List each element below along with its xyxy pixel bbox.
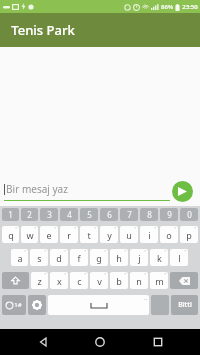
- button[interactable]: j: [130, 249, 148, 266]
- staticText: ': [154, 226, 156, 233]
- staticText: ..: [144, 295, 147, 302]
- staticText: ': [44, 249, 46, 256]
- button[interactable]: x: [50, 272, 68, 289]
- button[interactable]: v: [90, 272, 108, 289]
- staticText: ': [54, 226, 56, 233]
- staticText: k: [157, 252, 162, 264]
- staticText: ': [84, 249, 86, 256]
- button[interactable]: 5: [80, 208, 98, 221]
- staticText: n: [136, 275, 142, 287]
- staticText: Tenis Park: [11, 21, 75, 39]
- button[interactable]: s: [30, 249, 48, 266]
- staticText: u: [126, 229, 132, 241]
- button[interactable]: u: [120, 226, 138, 243]
- button[interactable]: b: [110, 272, 128, 289]
- staticText: ': [164, 249, 166, 256]
- staticText: z: [37, 275, 42, 287]
- button[interactable]: Back: [28, 329, 58, 355]
- staticText: ': [74, 226, 76, 233]
- staticText: 5: [87, 209, 92, 220]
- staticText: 6: [107, 209, 112, 220]
- button[interactable]: 8: [140, 208, 158, 221]
- button[interactable]: h: [110, 249, 128, 266]
- staticText: ': [84, 272, 86, 279]
- staticText: s: [37, 252, 42, 264]
- button[interactable]: q: [2, 226, 19, 243]
- staticText: ': [124, 249, 126, 256]
- button[interactable]: w: [21, 226, 38, 243]
- staticText: Bir mesaj yaz: [6, 182, 68, 196]
- button[interactable]: 3: [40, 208, 58, 221]
- staticText: Bitti: [178, 300, 192, 310]
- button[interactable]: Settings: [28, 295, 46, 315]
- button[interactable]: z: [31, 272, 48, 289]
- button[interactable]: 2: [21, 208, 38, 221]
- staticText: ': [144, 272, 146, 279]
- button[interactable]: Recents: [143, 329, 173, 355]
- button[interactable]: 7: [120, 208, 138, 221]
- staticText: ': [144, 249, 146, 256]
- button[interactable]: Bir mesaj yaz: [4, 182, 170, 197]
- button[interactable]: m: [150, 272, 168, 289]
- staticText: q: [8, 229, 14, 241]
- staticText: ': [174, 226, 176, 233]
- button[interactable]: k: [150, 249, 168, 266]
- staticText: a: [17, 252, 23, 264]
- button[interactable]: Bitti: [171, 295, 198, 315]
- staticText: h: [116, 252, 122, 264]
- staticText: b: [116, 275, 122, 287]
- staticText: ': [124, 272, 126, 279]
- button[interactable]: c: [70, 272, 88, 289]
- button[interactable]: 1: [2, 208, 19, 221]
- button[interactable]: r: [60, 226, 78, 243]
- staticText: r: [67, 229, 71, 241]
- button[interactable]: f: [70, 249, 88, 266]
- staticText: 8: [147, 209, 152, 220]
- button[interactable]: Backspace: [170, 272, 198, 289]
- button[interactable]: 9: [160, 208, 178, 221]
- staticText: t: [87, 229, 91, 241]
- button[interactable]: n: [130, 272, 148, 289]
- staticText: ': [134, 226, 136, 233]
- button[interactable]: l: [170, 249, 188, 266]
- button[interactable]: t: [80, 226, 98, 243]
- staticText: 4: [67, 209, 72, 220]
- staticText: ': [114, 226, 116, 233]
- button[interactable]: g: [90, 249, 108, 266]
- button[interactable]: Space: [48, 295, 149, 315]
- staticText: j: [138, 252, 141, 264]
- button[interactable]: 0: [180, 208, 198, 221]
- staticText: l: [178, 252, 181, 264]
- button[interactable]: Home: [85, 329, 115, 355]
- staticText: ': [104, 249, 106, 256]
- staticText: p: [186, 229, 192, 241]
- staticText: 9: [167, 209, 172, 220]
- button[interactable]: p: [180, 226, 198, 243]
- button[interactable]: a: [11, 249, 28, 266]
- staticText: ': [24, 249, 26, 256]
- button[interactable]: Send: [172, 181, 193, 202]
- button[interactable]: 6: [100, 208, 118, 221]
- staticText: ': [184, 249, 186, 256]
- staticText: ': [64, 272, 66, 279]
- button[interactable]: d: [50, 249, 68, 266]
- staticText: d: [56, 252, 62, 264]
- button[interactable]: Symbols: [2, 295, 26, 315]
- staticText: 23:50: [182, 3, 198, 11]
- button[interactable]: i: [140, 226, 158, 243]
- staticText: 7: [127, 209, 132, 220]
- button[interactable]: e: [40, 226, 58, 243]
- staticText: e: [46, 229, 52, 241]
- button[interactable]: 4: [60, 208, 78, 221]
- button[interactable]: Shift: [2, 272, 29, 289]
- staticText: ': [44, 272, 46, 279]
- button[interactable]: y: [100, 226, 118, 243]
- staticText: c: [77, 275, 82, 287]
- staticText: 1: [8, 209, 13, 220]
- staticText: f: [77, 252, 81, 264]
- button[interactable]: o: [160, 226, 178, 243]
- staticText: x: [57, 275, 62, 287]
- staticText: ': [104, 272, 106, 279]
- staticText: g: [96, 252, 102, 264]
